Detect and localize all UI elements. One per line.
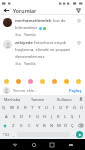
button[interactable]: G — [34, 112, 41, 121]
staticText: Merhaba — [4, 97, 21, 102]
button[interactable]: Like — [76, 40, 82, 46]
button[interactable]: Backspace — [76, 121, 85, 130]
button[interactable]: C — [25, 121, 33, 130]
staticText: L — [64, 114, 67, 120]
staticText: Ü — [80, 105, 84, 111]
button[interactable]: N — [48, 121, 55, 130]
button[interactable]: Paylaş — [69, 88, 82, 93]
button[interactable]: Yorum ekle... — [13, 88, 67, 93]
staticText: zekiyede — [15, 40, 33, 46]
staticText: U — [45, 105, 49, 111]
button[interactable]: Home — [29, 140, 38, 149]
button[interactable]: Yanıtla — [24, 32, 36, 37]
button[interactable]: B — [41, 121, 48, 130]
button[interactable]: F — [26, 112, 34, 121]
button[interactable]: Ç — [69, 121, 76, 130]
staticText: K — [57, 114, 60, 120]
button[interactable]: Y — [36, 103, 43, 112]
staticText: V — [36, 123, 39, 129]
button[interactable]: K — [55, 112, 62, 121]
button[interactable]: Like — [76, 18, 82, 24]
staticText: bilmezdiniz — [15, 25, 38, 31]
button[interactable]: S — [10, 112, 18, 121]
staticText: N — [50, 123, 54, 129]
staticText: Ö — [64, 123, 68, 129]
button[interactable]: Keyboard — [66, 140, 75, 149]
staticText: hoşlarına, elimde ve poşuari olan — [15, 47, 74, 53]
button[interactable]: I — [76, 112, 83, 121]
staticText: G — [36, 114, 40, 120]
staticText: Tamam — [31, 97, 45, 102]
button[interactable]: V — [33, 121, 41, 130]
staticText: I — [53, 105, 55, 111]
button[interactable]: Back — [10, 140, 19, 149]
button[interactable]: Ö — [62, 121, 69, 130]
button[interactable]: Emoji 2 — [15, 78, 22, 85]
staticText: , — [13, 132, 15, 137]
button[interactable]: M — [55, 121, 62, 130]
staticText: W — [10, 105, 14, 111]
button[interactable]: Emoji 1 — [3, 78, 10, 85]
staticText: T — [31, 105, 34, 111]
button[interactable]: J — [48, 112, 55, 121]
button[interactable]: O — [57, 103, 64, 112]
button[interactable]: ?123 — [2, 131, 11, 138]
button[interactable]: Emoji 3 — [27, 78, 34, 85]
button[interactable]: , — [11, 131, 16, 138]
staticText: E — [17, 105, 20, 111]
staticText: 3sa — [15, 32, 21, 37]
button[interactable]: Yanıtla — [24, 61, 36, 66]
button[interactable]: L — [62, 112, 69, 121]
staticText: Z — [12, 123, 15, 129]
button[interactable]: Z — [9, 121, 17, 130]
staticText: M — [57, 123, 61, 129]
button[interactable]: Send — [75, 7, 82, 14]
button[interactable]: Back — [3, 7, 10, 14]
button[interactable]: Send message — [76, 131, 83, 138]
button[interactable]: Shift — [0, 121, 9, 130]
staticText: O — [59, 105, 63, 111]
staticText: Y — [38, 105, 41, 111]
button[interactable]: Voice input — [77, 95, 85, 103]
staticText: S — [13, 114, 16, 120]
button[interactable]: Tamam — [25, 95, 51, 103]
button[interactable]: . — [71, 131, 76, 138]
button[interactable]: T — [29, 103, 36, 112]
button[interactable]: merhametlimelek — [0, 15, 85, 37]
button[interactable]: Emoji 7 — [75, 78, 82, 85]
button[interactable]: Merhaba — [0, 95, 25, 103]
staticText: denemelerimiz — [15, 54, 45, 60]
button[interactable]: X — [17, 121, 25, 130]
button[interactable]: Emoji 6 — [63, 78, 70, 85]
button[interactable]: Recents — [47, 140, 56, 149]
button[interactable]: A — [2, 112, 10, 121]
button[interactable]: Emoji 4 — [39, 78, 46, 85]
button[interactable]: Ü — [78, 103, 85, 112]
staticText: Ç — [71, 123, 74, 129]
staticText: Ğ — [73, 105, 77, 111]
button[interactable]: E — [15, 103, 22, 112]
button[interactable]: Emoji 5 — [51, 78, 58, 85]
button[interactable]: U — [43, 103, 50, 112]
button[interactable]: zekiyede — [0, 37, 85, 66]
button[interactable]: W — [8, 103, 15, 112]
staticText: B — [43, 123, 46, 129]
staticText: P — [66, 105, 69, 111]
staticText: Q — [2, 105, 6, 111]
button[interactable]: Q — [0, 103, 8, 112]
button[interactable]: Ş — [69, 112, 76, 121]
button[interactable]: D — [18, 112, 26, 121]
button[interactable]: H — [41, 112, 48, 121]
staticText: . — [73, 132, 75, 137]
button[interactable]: P — [64, 103, 71, 112]
button[interactable]: R — [22, 103, 29, 112]
staticText: merhametlimelek — [15, 18, 52, 24]
staticText: 3sa — [15, 61, 21, 66]
staticText: Ş — [71, 114, 74, 120]
button[interactable]: I — [50, 103, 57, 112]
staticText: X — [20, 123, 23, 129]
button[interactable]: Kullanıcı — [51, 95, 77, 103]
staticText: Yorumlar — [13, 7, 37, 14]
button[interactable]: Ğ — [71, 103, 78, 112]
